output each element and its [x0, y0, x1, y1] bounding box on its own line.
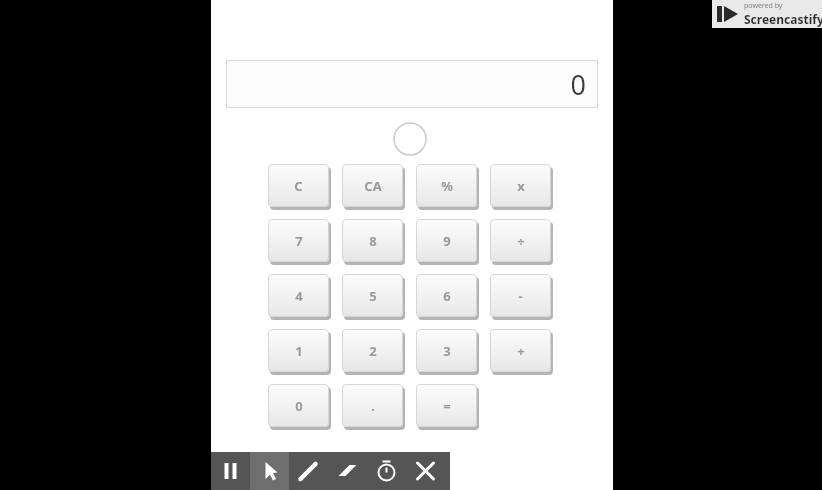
button[interactable]: 6	[416, 274, 477, 321]
staticText: +	[517, 342, 525, 360]
button[interactable]: Pen	[289, 452, 328, 490]
button[interactable]: 0	[226, 60, 598, 108]
staticText: C	[294, 177, 303, 195]
button[interactable]: Eraser	[328, 452, 367, 490]
staticText: 6	[443, 287, 451, 305]
staticText: Screencastify	[744, 11, 822, 27]
button[interactable]: Close	[406, 452, 445, 490]
button[interactable]: 7	[268, 219, 329, 266]
button[interactable]: 8	[342, 219, 403, 266]
button[interactable]: 9	[416, 219, 477, 266]
button[interactable]: powered by	[712, 0, 822, 28]
button[interactable]: 0	[268, 384, 329, 431]
button[interactable]: Toggle	[393, 122, 427, 156]
button[interactable]: 3	[416, 329, 477, 376]
button[interactable]: -	[490, 274, 551, 321]
button[interactable]: 1	[268, 329, 329, 376]
staticText: 7	[295, 232, 303, 250]
staticText: 2	[369, 342, 377, 360]
staticText: 0	[570, 66, 586, 103]
button[interactable]: Select	[250, 452, 289, 490]
staticText: 8	[369, 232, 377, 250]
staticText: 5	[369, 287, 377, 305]
staticText: 0	[295, 397, 303, 415]
button[interactable]: .	[342, 384, 403, 431]
staticText: powered by	[744, 1, 783, 11]
button[interactable]: Timer	[367, 452, 406, 490]
button[interactable]: 2	[342, 329, 403, 376]
staticText: CA	[364, 177, 382, 195]
staticText: 1	[295, 342, 303, 360]
staticText: ÷	[517, 232, 525, 250]
staticText: x	[517, 177, 525, 195]
staticText: 3	[443, 342, 451, 360]
button[interactable]: CA	[342, 164, 403, 211]
staticText: %	[441, 177, 453, 195]
button[interactable]: Pause	[211, 452, 250, 490]
button[interactable]: =	[416, 384, 477, 431]
button[interactable]: +	[490, 329, 551, 376]
staticText: -	[518, 287, 523, 305]
button[interactable]: C	[268, 164, 329, 211]
staticText: =	[443, 397, 451, 415]
button[interactable]: ÷	[490, 219, 551, 266]
button[interactable]: 4	[268, 274, 329, 321]
staticText: .	[371, 397, 375, 415]
button[interactable]: %	[416, 164, 477, 211]
staticText: 9	[443, 232, 451, 250]
staticText: 4	[295, 287, 303, 305]
button[interactable]: 5	[342, 274, 403, 321]
button[interactable]: x	[490, 164, 551, 211]
